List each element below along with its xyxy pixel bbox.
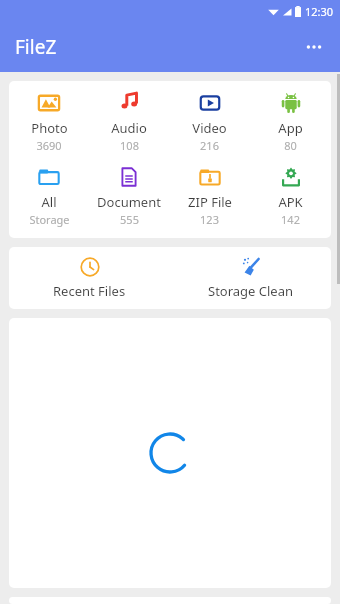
staticText: Audio xyxy=(111,119,147,137)
staticText: 142 xyxy=(281,212,300,227)
button[interactable]: Document xyxy=(89,164,169,229)
staticText: Document xyxy=(97,193,161,211)
staticText: 216 xyxy=(200,138,219,153)
button[interactable]: Audio xyxy=(89,90,169,155)
staticText: APK xyxy=(278,193,303,211)
button[interactable]: Photo xyxy=(9,90,89,155)
staticText: Video xyxy=(192,119,227,137)
button[interactable]: ZIP File xyxy=(169,164,250,229)
staticText: Storage xyxy=(29,212,70,227)
staticText: ZIP File xyxy=(188,193,232,211)
staticText: 3690 xyxy=(36,138,62,153)
button[interactable]: APK xyxy=(250,164,331,229)
button[interactable]: Storage Clean xyxy=(170,247,331,309)
staticText: 108 xyxy=(120,138,139,153)
staticText: 555 xyxy=(120,212,139,227)
button[interactable]: App xyxy=(250,90,331,155)
staticText: 12:30 xyxy=(305,4,334,19)
staticText: FileZ xyxy=(15,34,57,60)
button[interactable]: All xyxy=(9,164,89,229)
staticText: 123 xyxy=(200,212,219,227)
button[interactable]: Recent Files xyxy=(9,247,170,309)
staticText: Photo xyxy=(31,119,68,137)
staticText: Storage Clean xyxy=(208,282,294,300)
button[interactable]: Video xyxy=(169,90,250,155)
staticText: 80 xyxy=(284,138,297,153)
button[interactable]: More options xyxy=(294,27,334,67)
staticText: App xyxy=(278,119,303,137)
staticText: Recent Files xyxy=(53,282,126,300)
staticText: All xyxy=(41,193,57,211)
